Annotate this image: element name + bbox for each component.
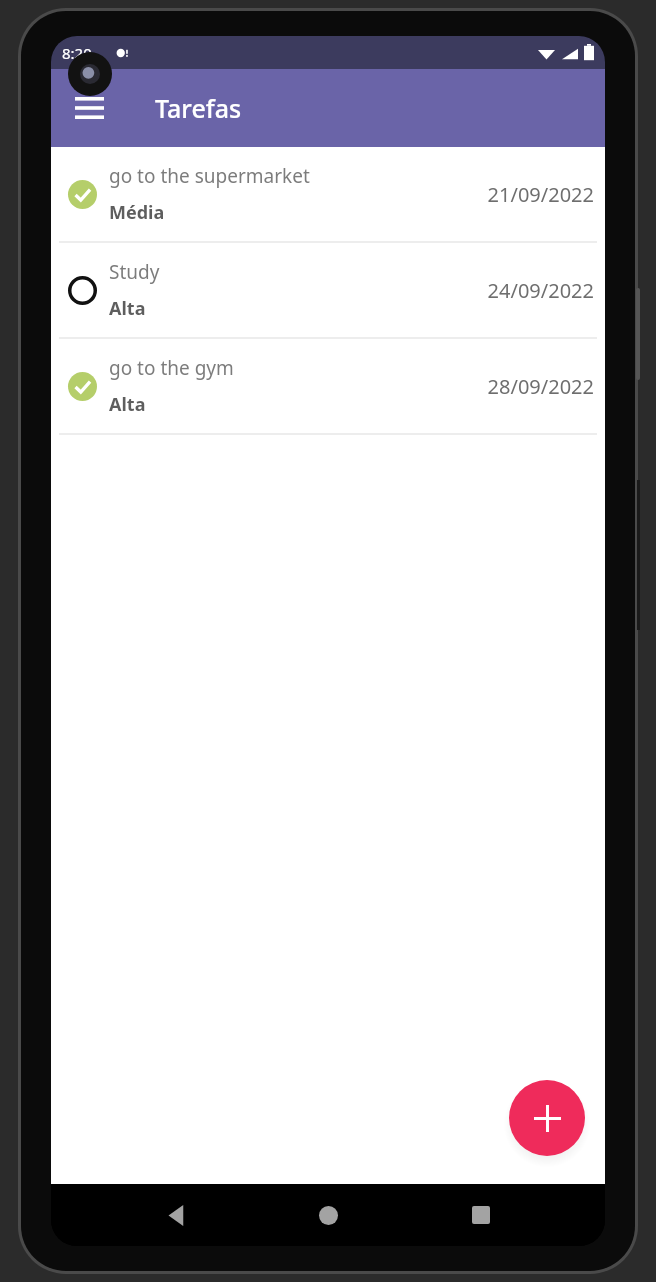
button[interactable]: Back [148,1187,204,1243]
button[interactable]: Mark task as done [60,268,104,312]
button[interactable]: Add new task [509,1080,585,1156]
button[interactable]: Open navigation menu [65,84,113,132]
button[interactable]: Mark task as not done [60,364,104,408]
button[interactable]: Mark task as not done [51,339,605,435]
staticText: 21/09/2022 [487,181,594,208]
button[interactable]: Mark task as not done [60,172,104,216]
staticText: go to the supermarket [109,163,310,189]
button[interactable]: Recent apps [453,1187,509,1243]
staticText: Média [109,200,165,225]
staticText: Alta [109,392,146,417]
button[interactable]: Mark task as not done [51,147,605,243]
staticText: Alta [109,296,146,321]
staticText: 8:20 [62,43,92,63]
staticText: Study [109,259,160,285]
staticText: go to the gym [109,355,234,381]
button[interactable]: Mark task as done [51,243,605,339]
staticText: Tarefas [155,91,242,125]
button[interactable]: Home [300,1187,356,1243]
staticText: 24/09/2022 [487,277,594,304]
staticText: 28/09/2022 [487,373,594,400]
